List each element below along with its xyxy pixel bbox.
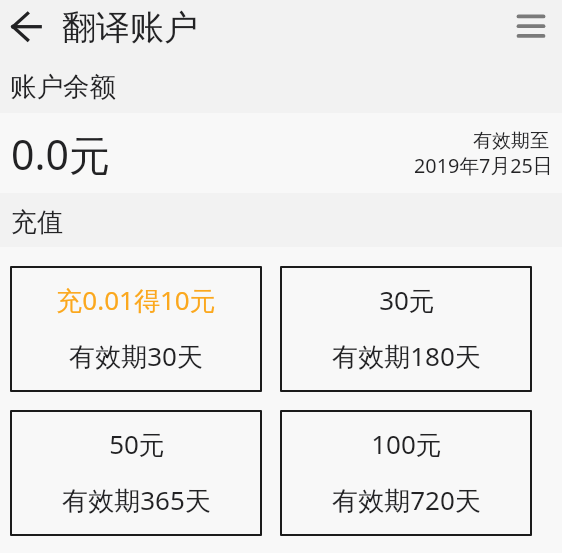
button[interactable]: 50元 bbox=[10, 410, 262, 536]
button[interactable]: 100元 bbox=[280, 410, 532, 536]
staticText: 充0.01得10元 bbox=[56, 282, 216, 318]
staticText: 有效期至 bbox=[473, 129, 549, 153]
staticText: 有效期180天 bbox=[332, 338, 481, 374]
staticText: 充值 bbox=[11, 206, 63, 239]
button[interactable]: 充0.01得10元 bbox=[10, 266, 262, 392]
staticText: 50元 bbox=[109, 426, 165, 462]
staticText: 有效期30天 bbox=[69, 338, 203, 374]
staticText: 翻译账户 bbox=[62, 6, 198, 49]
staticText: 100元 bbox=[371, 426, 442, 462]
staticText: 有效期720天 bbox=[332, 482, 481, 518]
staticText: 2019年7月25日 bbox=[414, 152, 553, 179]
button[interactable]: Menu bbox=[507, 3, 555, 51]
staticText: 0.0元 bbox=[11, 126, 110, 182]
button[interactable]: 30元 bbox=[280, 266, 532, 392]
staticText: 30元 bbox=[379, 282, 435, 318]
staticText: 账户余额 bbox=[10, 70, 116, 103]
button[interactable]: Back bbox=[4, 4, 52, 52]
staticText: 有效期365天 bbox=[62, 482, 211, 518]
